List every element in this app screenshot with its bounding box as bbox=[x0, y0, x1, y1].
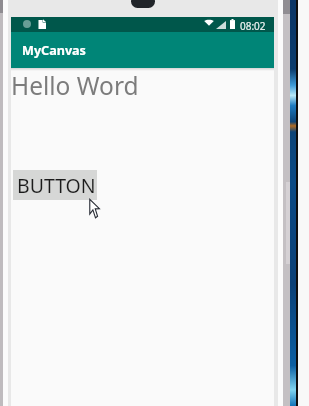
staticText: Hello Word bbox=[11, 69, 139, 102]
button[interactable]: BUTTON bbox=[13, 170, 97, 200]
other: Pointer bbox=[89, 199, 102, 218]
staticText: MyCanvas bbox=[22, 42, 86, 59]
staticText: BUTTON bbox=[17, 172, 96, 199]
button[interactable]: MyCanvas bbox=[11, 32, 274, 68]
staticText: 08:02 bbox=[240, 19, 266, 33]
